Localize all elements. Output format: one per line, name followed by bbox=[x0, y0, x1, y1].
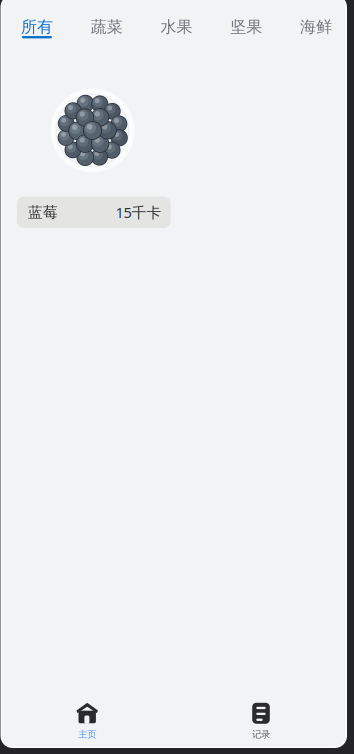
staticText: 15千卡 bbox=[115, 202, 161, 222]
staticText: 记录 bbox=[252, 729, 270, 740]
button[interactable]: 蔬菜 bbox=[72, 14, 142, 40]
staticText: 坚果 bbox=[230, 17, 262, 37]
staticText: 蔬菜 bbox=[91, 17, 123, 37]
button[interactable]: 海鲜 bbox=[281, 14, 351, 40]
button[interactable]: 主页 bbox=[37, 701, 137, 741]
button[interactable]: 坚果 bbox=[211, 14, 281, 40]
staticText: 水果 bbox=[160, 17, 192, 37]
button[interactable]: 所有 bbox=[2, 14, 72, 40]
button[interactable]: 记录 bbox=[211, 701, 311, 741]
staticText: 海鲜 bbox=[300, 17, 332, 37]
staticText: 所有 bbox=[21, 17, 53, 37]
staticText: 蓝莓 bbox=[28, 203, 58, 221]
staticText: 主页 bbox=[78, 729, 96, 740]
button[interactable]: 水果 bbox=[142, 14, 211, 40]
